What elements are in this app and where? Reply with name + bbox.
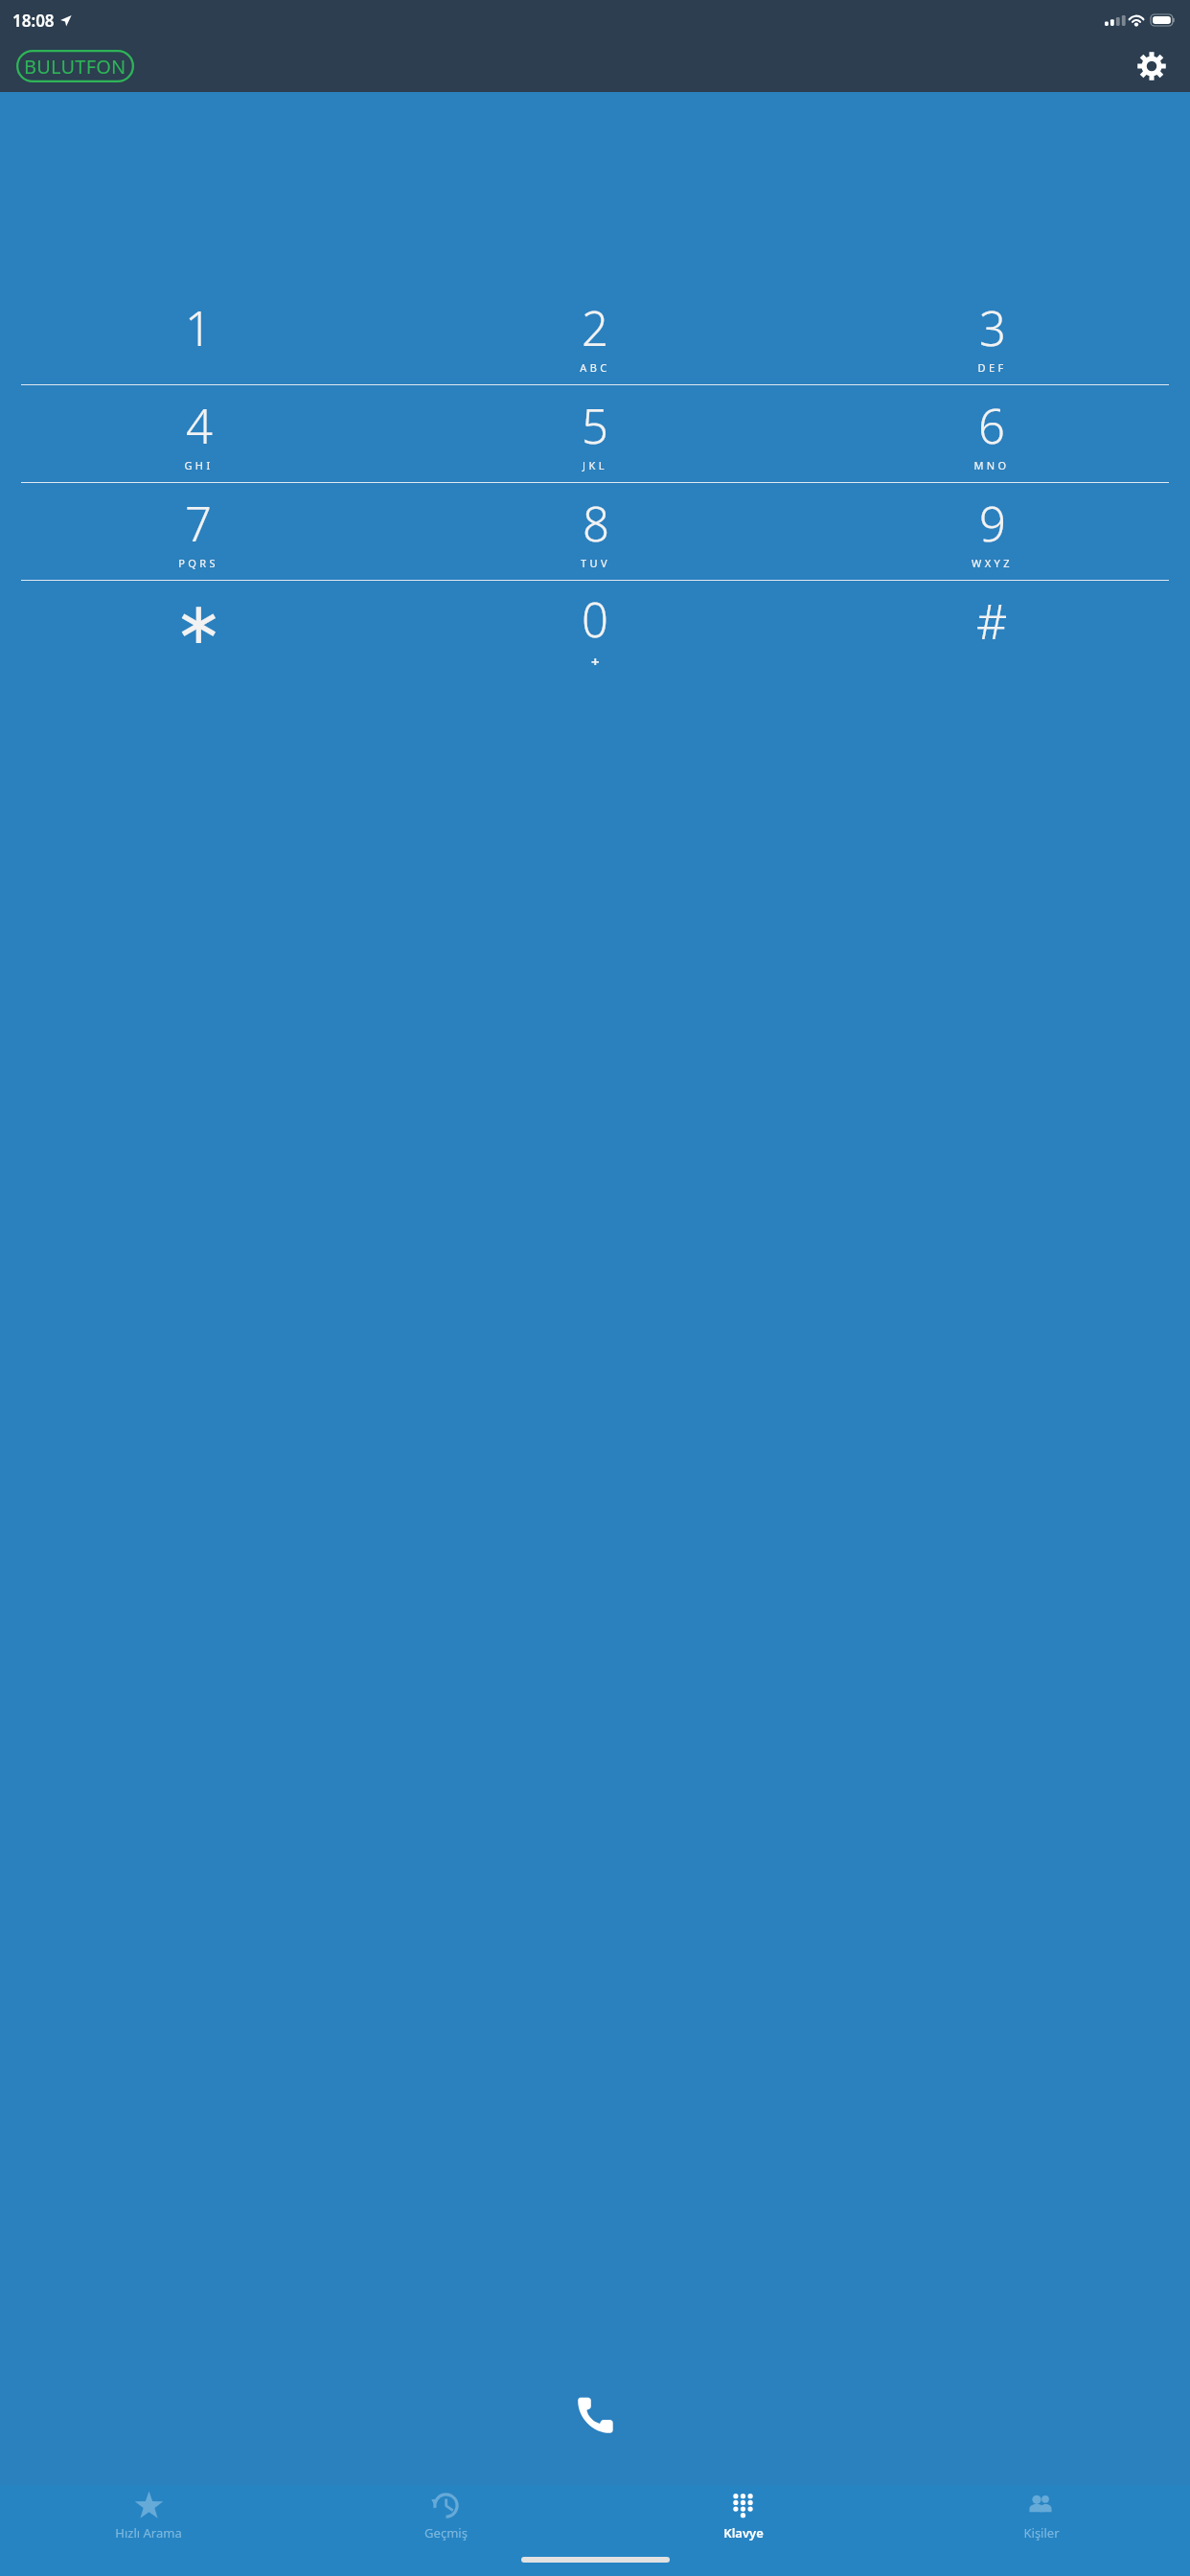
button[interactable]: BULUTFON bbox=[16, 50, 134, 82]
button[interactable]: 3 bbox=[793, 287, 1190, 384]
staticText: 7 bbox=[185, 492, 212, 556]
button[interactable]: 1 bbox=[0, 287, 397, 384]
staticText: 8 bbox=[583, 492, 609, 556]
staticText: ∗ bbox=[174, 589, 223, 656]
button[interactable]: 7 bbox=[0, 483, 397, 580]
staticText: + bbox=[591, 652, 600, 671]
button[interactable]: # bbox=[793, 581, 1190, 678]
staticText: Kişiler bbox=[1023, 2524, 1060, 2541]
button[interactable]: Hızlı Arama bbox=[0, 2485, 297, 2546]
button[interactable]: 4 bbox=[0, 385, 397, 482]
staticText: 18:08 bbox=[12, 10, 55, 32]
staticText: BULUTFON bbox=[24, 54, 126, 80]
button[interactable]: 6 bbox=[793, 385, 1190, 482]
button[interactable]: Call bbox=[551, 2372, 639, 2460]
staticText: Geçmiş bbox=[424, 2524, 468, 2541]
staticText: MNO bbox=[973, 458, 1010, 472]
button[interactable]: 0 bbox=[397, 581, 793, 678]
staticText: 2 bbox=[582, 296, 608, 360]
staticText: JKL bbox=[583, 458, 607, 472]
button[interactable]: Kişiler bbox=[892, 2485, 1190, 2546]
button[interactable]: 9 bbox=[793, 483, 1190, 580]
button[interactable]: 8 bbox=[397, 483, 793, 580]
staticText: 6 bbox=[978, 394, 1005, 458]
staticText: Klavye bbox=[723, 2524, 764, 2541]
staticText: GHI bbox=[184, 458, 214, 472]
staticText: 4 bbox=[186, 394, 213, 458]
staticText: 0 bbox=[582, 587, 608, 652]
staticText: ABC bbox=[580, 360, 610, 375]
staticText: 9 bbox=[979, 492, 1006, 556]
staticText: 1 bbox=[185, 296, 212, 360]
button[interactable]: ∗ bbox=[0, 581, 397, 678]
button[interactable]: Klavye bbox=[594, 2485, 892, 2546]
staticText: Hızlı Arama bbox=[115, 2524, 182, 2541]
button[interactable]: Geçmiş bbox=[297, 2485, 594, 2546]
staticText: WXYZ bbox=[972, 556, 1013, 570]
staticText: PQRS bbox=[178, 556, 218, 570]
button[interactable]: 5 bbox=[397, 385, 793, 482]
staticText: TUV bbox=[581, 556, 610, 570]
staticText: 3 bbox=[979, 296, 1006, 360]
staticText: 5 bbox=[582, 394, 608, 458]
staticText: # bbox=[976, 588, 1008, 654]
staticText: DEF bbox=[977, 360, 1007, 375]
button[interactable]: Settings bbox=[1131, 45, 1173, 87]
button[interactable]: 2 bbox=[397, 287, 793, 384]
